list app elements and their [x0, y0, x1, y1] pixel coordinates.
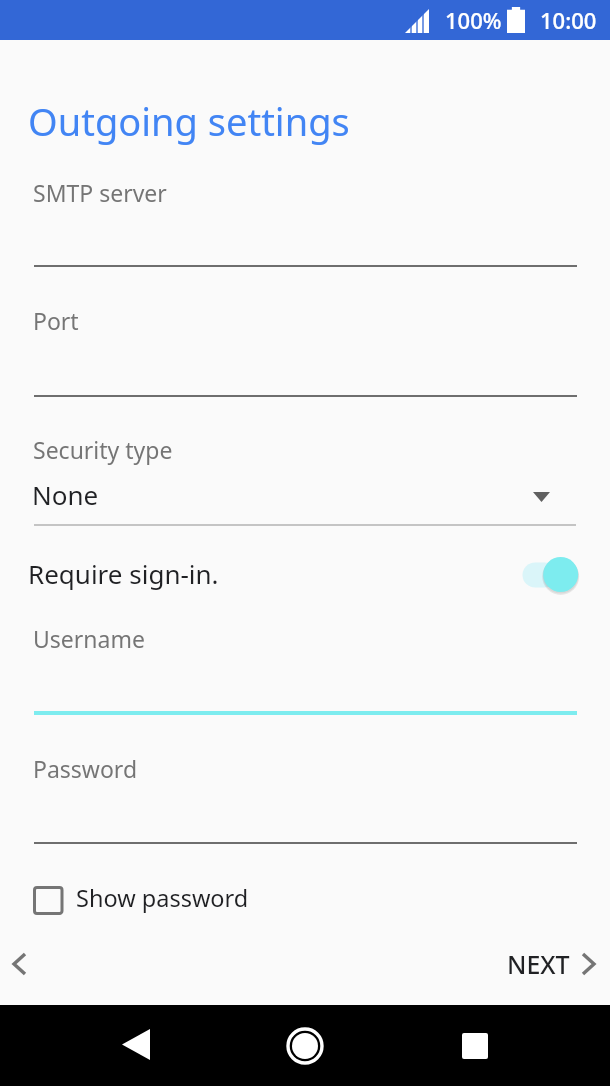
staticText: Outgoing settings	[28, 95, 350, 147]
staticText: Require sign-in.	[28, 556, 219, 591]
other: Signal strength	[405, 9, 429, 33]
button[interactable]: Security type	[34, 420, 576, 526]
button[interactable]: Username	[34, 606, 577, 715]
staticText: Port	[33, 305, 79, 336]
staticText: NEXT	[507, 947, 570, 981]
staticText: 100%	[445, 5, 502, 35]
button[interactable]: Show password	[21, 872, 249, 920]
staticText: Password	[33, 753, 138, 784]
other: Expand security type	[533, 492, 550, 502]
button[interactable]: Port	[34, 288, 577, 397]
staticText: Show password	[76, 882, 249, 914]
staticText: None	[32, 477, 99, 512]
button[interactable]: SMTP server	[34, 160, 577, 267]
button[interactable]: Back	[106, 1016, 166, 1076]
button[interactable]: Home	[275, 1016, 335, 1076]
button[interactable]: Recent apps	[445, 1016, 505, 1076]
button[interactable]: Require sign-in.	[0, 538, 610, 596]
staticText: Security type	[33, 434, 173, 465]
staticText: Username	[33, 623, 145, 654]
staticText: SMTP server	[33, 177, 167, 208]
button[interactable]: Previous step	[0, 942, 41, 986]
staticText: 10:00	[540, 5, 597, 35]
other: Battery full	[507, 7, 525, 33]
button[interactable]: Password	[34, 736, 577, 844]
button[interactable]: NEXT	[507, 947, 594, 981]
